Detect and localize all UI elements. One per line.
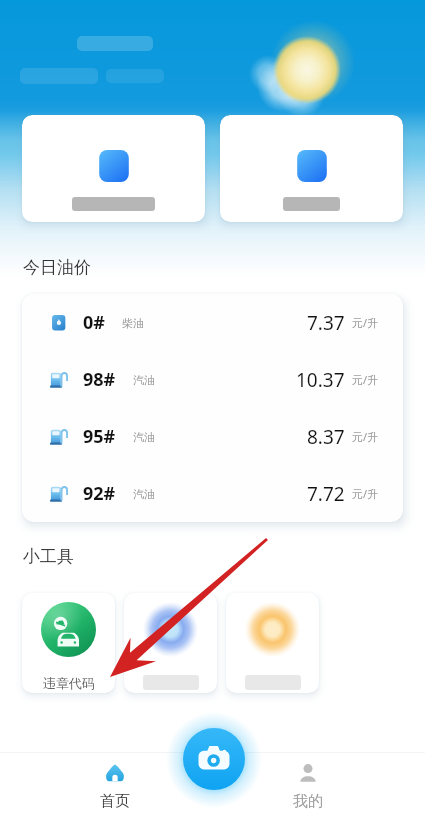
button[interactable]: 违章代码 [22,593,115,693]
staticText: 10.37 [296,367,345,393]
button[interactable]: 0# [22,294,403,351]
staticText: 首页 [100,792,130,811]
button[interactable] [226,593,319,693]
staticText: 8.37 [307,424,345,450]
button[interactable]: 首页 [75,762,155,811]
staticText: 元/升 [352,372,379,387]
staticText: 柴油 [122,316,144,330]
staticText: 7.37 [307,310,345,336]
staticText: 0# [83,310,105,335]
staticText: 今日油价 [23,257,91,278]
button[interactable] [22,115,205,222]
button[interactable] [124,593,217,693]
staticText: 98# [83,367,116,392]
staticText: 汽油 [133,487,155,501]
staticText: 元/升 [352,315,379,330]
staticText: 汽油 [133,430,155,444]
staticText: 95# [83,424,116,449]
button[interactable]: 我的 [268,762,348,811]
button[interactable]: 92# [22,465,403,522]
staticText: 我的 [293,792,323,811]
staticText: 92# [83,481,116,506]
button[interactable]: 98# [22,351,403,408]
button[interactable] [220,115,403,222]
button[interactable]: Camera [183,728,245,790]
staticText: 小工具 [23,546,74,567]
staticText: 元/升 [352,486,379,501]
staticText: 7.72 [307,481,345,507]
staticText: 汽油 [133,373,155,387]
button[interactable]: 95# [22,408,403,465]
staticText: 违章代码 [43,675,95,691]
staticText: 元/升 [352,429,379,444]
